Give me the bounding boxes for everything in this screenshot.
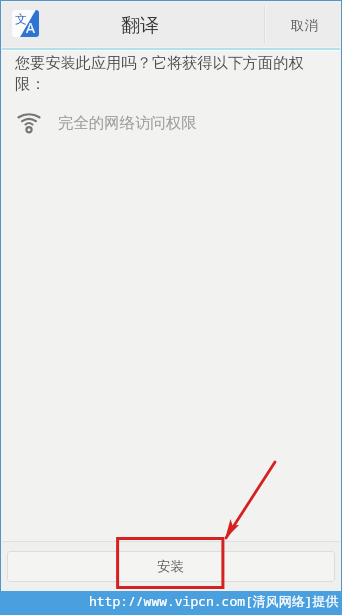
- staticText: 完全的网络访问权限: [58, 113, 197, 132]
- staticText: 取消: [291, 17, 318, 34]
- staticText: http://www.vipcn.com[清风网络]提供: [89, 592, 339, 610]
- button[interactable]: 安装: [7, 551, 335, 582]
- staticText: 文: [15, 11, 27, 26]
- other: Translate app icon: [12, 10, 39, 37]
- staticText: 您要安装此应用吗？它将获得以下方面的权限：: [15, 53, 323, 93]
- staticText: 翻译: [121, 14, 159, 38]
- other: Full network access: [16, 109, 42, 135]
- staticText: A: [26, 18, 35, 37]
- staticText: 安装: [157, 558, 185, 575]
- button[interactable]: 取消: [269, 2, 339, 49]
